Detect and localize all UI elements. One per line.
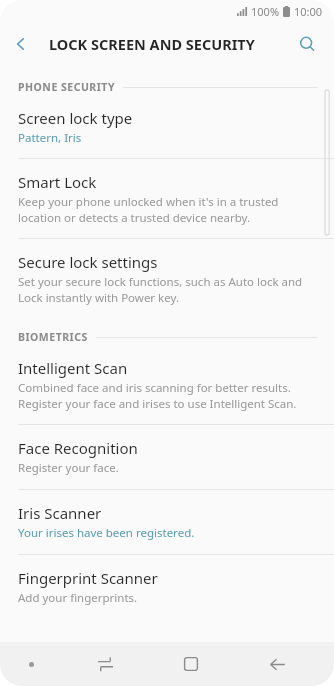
staticText: LOCK SCREEN AND SECURITY: [49, 34, 255, 54]
staticText: 10:00: [294, 4, 323, 19]
staticText: Intelligent Scan: [18, 358, 128, 378]
staticText: 100%: [251, 4, 280, 19]
staticText: Secure lock settings: [18, 252, 158, 272]
staticText: Set your secure lock functions, such as …: [18, 274, 303, 305]
staticText: Keep your phone unlocked when it's in a …: [18, 194, 279, 225]
button[interactable]: Recents: [62, 642, 148, 686]
button[interactable]: Show navigation bar: [0, 642, 62, 686]
staticText: Your irises have been registered.: [18, 525, 195, 541]
button[interactable]: Back: [0, 23, 42, 65]
button[interactable]: Screen lock type: [0, 97, 334, 158]
button[interactable]: Face Recognition: [0, 425, 334, 489]
staticText: Face Recognition: [18, 438, 138, 458]
staticText: Screen lock type: [18, 108, 133, 128]
staticText: Pattern, Iris: [18, 130, 82, 146]
button[interactable]: Intelligent Scan: [0, 347, 334, 424]
button[interactable]: Secure lock settings: [0, 239, 334, 318]
button[interactable]: Home: [148, 642, 234, 686]
staticText: Register your face.: [18, 460, 119, 476]
button[interactable]: Search: [287, 24, 327, 64]
staticText: Iris Scanner: [18, 503, 102, 523]
staticText: Add your fingerprints.: [18, 590, 138, 606]
button[interactable]: Fingerprint Scanner: [0, 555, 334, 619]
staticText: PHONE SECURITY: [18, 80, 115, 94]
staticText: Fingerprint Scanner: [18, 568, 158, 588]
button[interactable]: Iris Scanner: [0, 490, 334, 554]
staticText: Combined face and iris scanning for bett…: [18, 380, 297, 411]
staticText: BIOMETRICS: [18, 330, 88, 344]
staticText: Smart Lock: [18, 172, 97, 192]
button[interactable]: Smart Lock: [0, 159, 334, 238]
button[interactable]: Back: [234, 642, 320, 686]
